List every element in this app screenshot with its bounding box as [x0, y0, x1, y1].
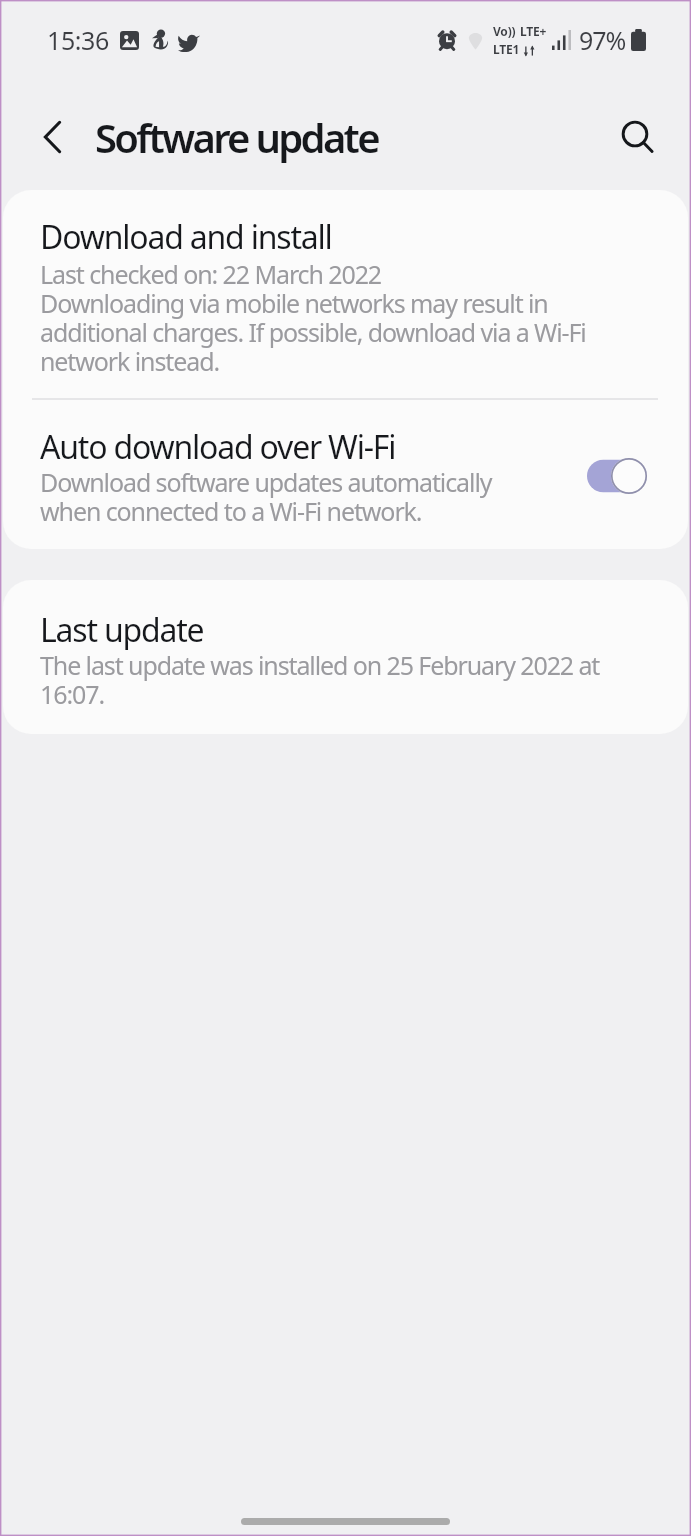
staticText: Download and install: [40, 215, 332, 259]
staticText: LTE+: [520, 23, 547, 39]
button[interactable]: Download and install: [3, 190, 688, 398]
button[interactable]: Search: [606, 105, 670, 169]
staticText: Vo)): [493, 23, 516, 39]
staticText: Download software updates automatically …: [40, 465, 537, 528]
staticText: 15:36: [47, 23, 109, 57]
button[interactable]: Auto download over Wi-Fi: [3, 400, 688, 549]
staticText: Software update: [95, 110, 378, 164]
staticText: Last update: [40, 608, 204, 652]
button[interactable]: Auto download over Wi-Fi toggle: [587, 458, 647, 494]
staticText: Auto download over Wi-Fi: [40, 425, 396, 469]
staticText: Last checked on: 22 March 2022 Downloadi…: [40, 257, 656, 378]
staticText: LTE1: [493, 41, 520, 57]
button[interactable]: Navigate up: [20, 105, 84, 169]
staticText: The last update was installed on 25 Febr…: [40, 648, 655, 711]
staticText: 97%: [579, 23, 626, 57]
button[interactable]: Last update: [3, 580, 688, 734]
